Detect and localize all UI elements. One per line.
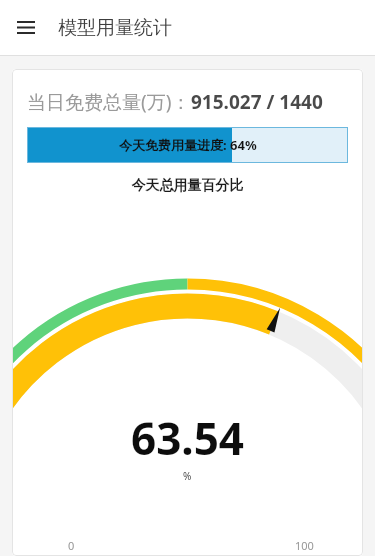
staticText: % bbox=[183, 469, 192, 483]
staticText: 模型用量统计 bbox=[58, 16, 172, 40]
staticText: 今天总用量百分比 bbox=[12, 177, 363, 195]
staticText: 915.027 / 1440 bbox=[191, 89, 323, 115]
button[interactable]: Open navigation menu bbox=[10, 12, 41, 43]
button[interactable]: 今天免费用量进度: 64% bbox=[28, 128, 347, 162]
staticText: 0 bbox=[68, 538, 75, 553]
staticText: 当日免费总量(万)： bbox=[27, 89, 191, 115]
staticText: 63.54 bbox=[131, 408, 245, 468]
staticText: 100 bbox=[295, 538, 314, 553]
staticText: 今天免费用量进度: 64% bbox=[119, 136, 257, 154]
